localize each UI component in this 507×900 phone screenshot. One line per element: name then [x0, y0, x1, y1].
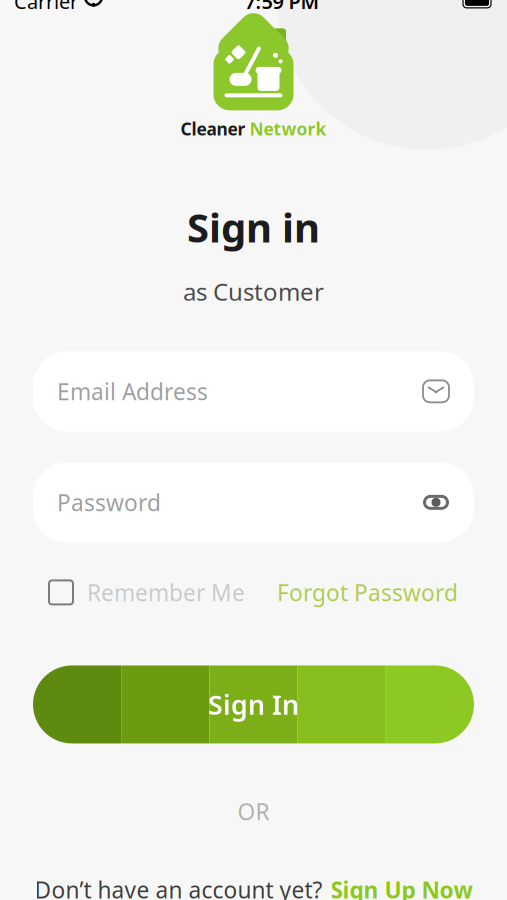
staticText: Remember Me — [87, 577, 245, 607]
button[interactable]: Sign Up Now — [330, 875, 472, 900]
staticText: 7:59 PM — [244, 0, 319, 15]
staticText: Sign In — [208, 687, 299, 722]
staticText: OR — [237, 796, 269, 827]
staticText: as Customer — [183, 275, 324, 307]
staticText: Forgot Password — [277, 577, 458, 607]
staticText: Sign Up Now — [330, 875, 472, 900]
staticText: Don’t have an account yet? — [34, 875, 322, 900]
staticText: Sign in — [187, 200, 320, 253]
button[interactable]: Remember Me — [49, 571, 245, 613]
button[interactable]: Sign In — [33, 665, 474, 743]
staticText: Cleaner — [180, 117, 245, 140]
staticText: Carrier — [14, 0, 78, 15]
staticText: Email Address — [57, 376, 208, 406]
staticText: Network — [249, 117, 326, 140]
staticText: Password — [57, 487, 161, 517]
button[interactable]: Forgot Password — [277, 571, 458, 613]
